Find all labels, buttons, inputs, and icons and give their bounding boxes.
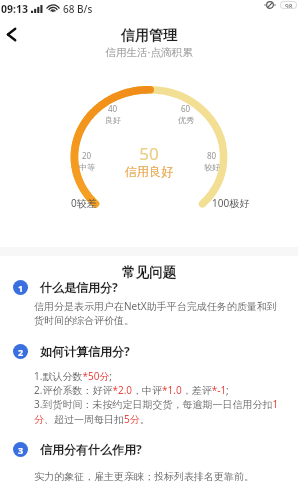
staticText: 常见问题 [0,264,298,281]
staticText: 60 [181,103,191,114]
staticText: 68 B/s [63,2,93,16]
button[interactable]: 3 [13,441,142,457]
button[interactable]: 1 [13,279,118,295]
button[interactable]: Back [0,22,24,48]
staticText: 信用分有什么作用? [40,441,142,457]
staticText: 0较差 [71,196,97,210]
staticText: 80 [207,150,217,161]
staticText: 信用分是表示用户在NetX助手平台完成任务的质量和到货时间的综合评价值。 [34,299,282,327]
staticText: 信用良好 [0,164,298,179]
staticText: 2 [18,346,24,358]
staticText: 3.到货时间：未按约定日期交货，每逾期一日信用分扣1分、超过一周每日扣5分。 [34,397,284,426]
staticText: 20 [82,150,92,161]
button[interactable]: 2 [13,343,130,359]
staticText: 1.默认分数*50分; [34,369,113,383]
staticText: 40 [108,103,118,114]
staticText: 什么是信用分? [40,279,118,295]
staticText: 2.评价系数：好评*2.0，中评*1.0，差评*-1; [34,383,229,397]
staticText: 中等 [79,162,95,172]
staticText: 100极好 [212,196,250,210]
staticText: 信用生活·点滴积累 [0,45,298,59]
staticText: 如何计算信用分? [40,343,130,359]
staticText: 09:13 [1,2,28,16]
staticText: 良好 [105,115,121,125]
staticText: 98 [285,2,293,8]
staticText: 1 [18,282,24,294]
staticText: 50 [0,142,298,165]
staticText: 3 [18,444,24,456]
staticText: 实力的象征，雇主更亲睐；投标列表排名更靠前。 [34,470,284,483]
staticText: 较好 [204,162,220,172]
staticText: 优秀 [178,115,194,125]
staticText: 信用管理 [0,27,298,45]
